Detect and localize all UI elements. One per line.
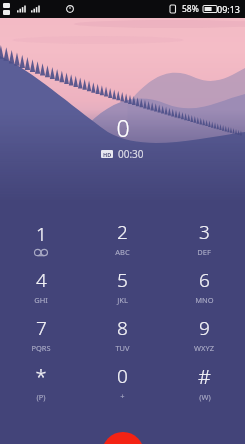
staticText: 09:13 xyxy=(217,3,241,15)
staticText: JKL xyxy=(117,295,128,305)
staticText: PQRS xyxy=(31,343,51,353)
staticText: 5 xyxy=(117,267,128,293)
staticText: 1 xyxy=(36,221,47,247)
staticText: 00:30 xyxy=(118,147,144,161)
button[interactable]: 1 xyxy=(0,214,81,262)
staticText: GHI xyxy=(34,295,48,305)
button[interactable]: 6 xyxy=(163,262,245,310)
staticText: + xyxy=(120,391,125,401)
staticText: 3 xyxy=(199,219,210,245)
staticText: 2 xyxy=(117,219,128,245)
button[interactable]: 7 xyxy=(0,310,81,358)
button[interactable]: * xyxy=(0,358,81,406)
button[interactable]: 0 xyxy=(81,358,163,406)
button[interactable]: 3 xyxy=(163,214,245,262)
staticText: * xyxy=(35,363,47,390)
button[interactable]: 4 xyxy=(0,262,81,310)
staticText: 9 xyxy=(199,315,210,341)
staticText: 8 xyxy=(117,315,128,341)
staticText: MNO xyxy=(195,295,214,305)
button[interactable]: 2 xyxy=(81,214,163,262)
staticText: # xyxy=(198,363,211,390)
staticText: 4 xyxy=(36,267,47,293)
button[interactable]: 8 xyxy=(81,310,163,358)
staticText: 6 xyxy=(199,267,210,293)
staticText: WXYZ xyxy=(194,343,214,353)
staticText: 0 xyxy=(117,363,128,389)
button[interactable]: Call xyxy=(102,432,144,444)
staticText: (W) xyxy=(199,392,211,402)
staticText: TUV xyxy=(115,343,130,353)
staticText: 58% xyxy=(182,3,199,15)
button[interactable]: 9 xyxy=(163,310,245,358)
button[interactable]: # xyxy=(163,358,245,406)
staticText: HD xyxy=(103,151,112,158)
staticText: 0 xyxy=(116,112,130,143)
staticText: 7 xyxy=(36,315,47,341)
button[interactable]: 5 xyxy=(81,262,163,310)
staticText: DEF xyxy=(197,247,211,257)
staticText: ABC xyxy=(115,247,130,257)
staticText: (P) xyxy=(36,392,46,402)
